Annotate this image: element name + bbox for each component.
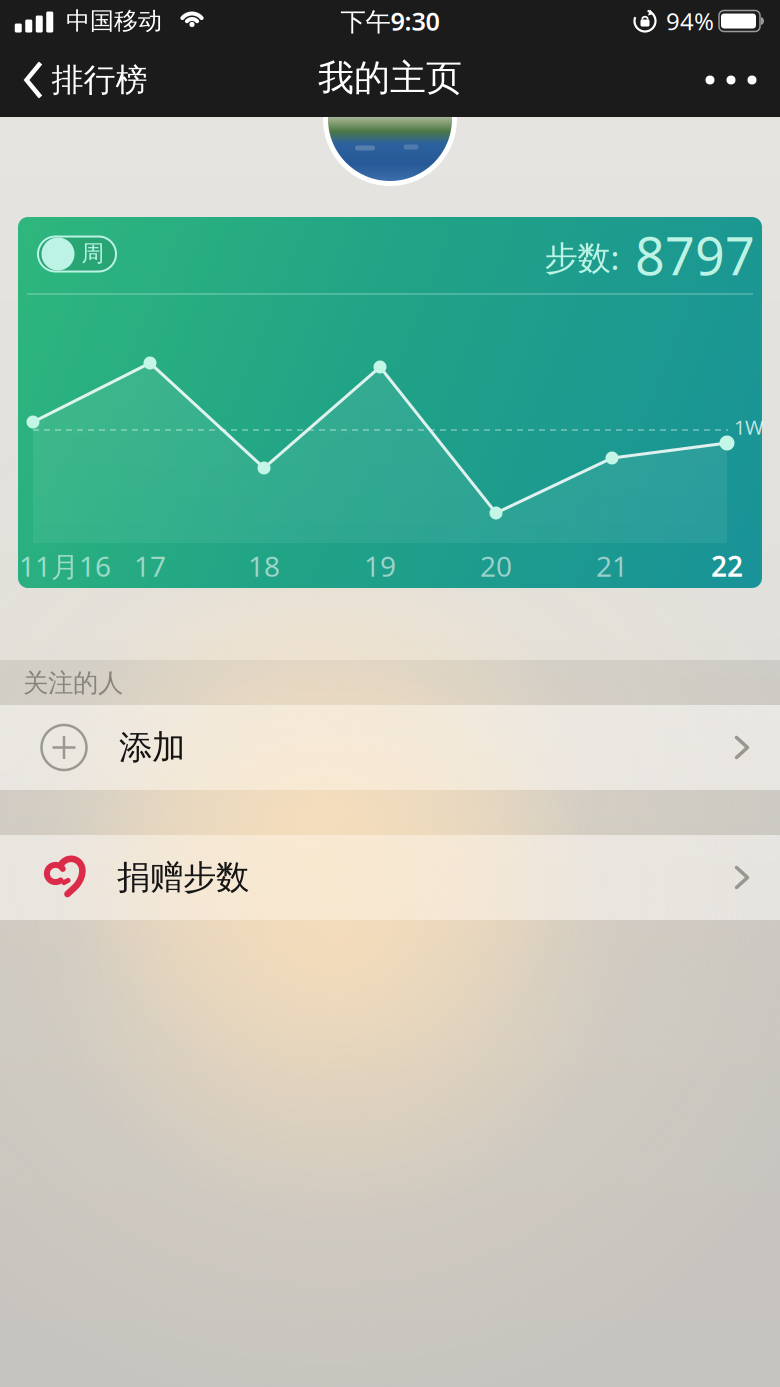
button[interactable]: 周/日切换 xyxy=(38,236,116,271)
button[interactable]: 捐赠步数 xyxy=(0,835,780,920)
button[interactable]: 排行榜 xyxy=(24,44,147,116)
staticText: 22 xyxy=(711,547,743,585)
staticText: 11月16 xyxy=(19,547,111,585)
staticText: 关注的人 xyxy=(23,667,123,698)
staticText: 周 xyxy=(81,240,104,267)
staticText: 捐赠步数 xyxy=(117,857,249,898)
staticText: 步数: xyxy=(544,235,619,279)
button[interactable]: 添加 xyxy=(0,705,780,790)
staticText: 1W xyxy=(734,414,764,440)
staticText: 我的主页 xyxy=(318,56,462,100)
staticText: 8797 xyxy=(635,220,755,290)
staticText: 20 xyxy=(480,547,512,585)
staticText: 中国移动 xyxy=(66,6,162,36)
button[interactable]: 更多 xyxy=(686,44,776,116)
staticText: 19 xyxy=(364,547,396,585)
staticText: 18 xyxy=(248,547,280,585)
staticText: 94% xyxy=(666,5,714,37)
staticText: 21 xyxy=(596,547,628,585)
staticText: 添加 xyxy=(119,727,185,768)
staticText: 下午9:30 xyxy=(340,4,439,38)
staticText: 排行榜 xyxy=(51,60,147,100)
staticText: 17 xyxy=(134,547,166,585)
